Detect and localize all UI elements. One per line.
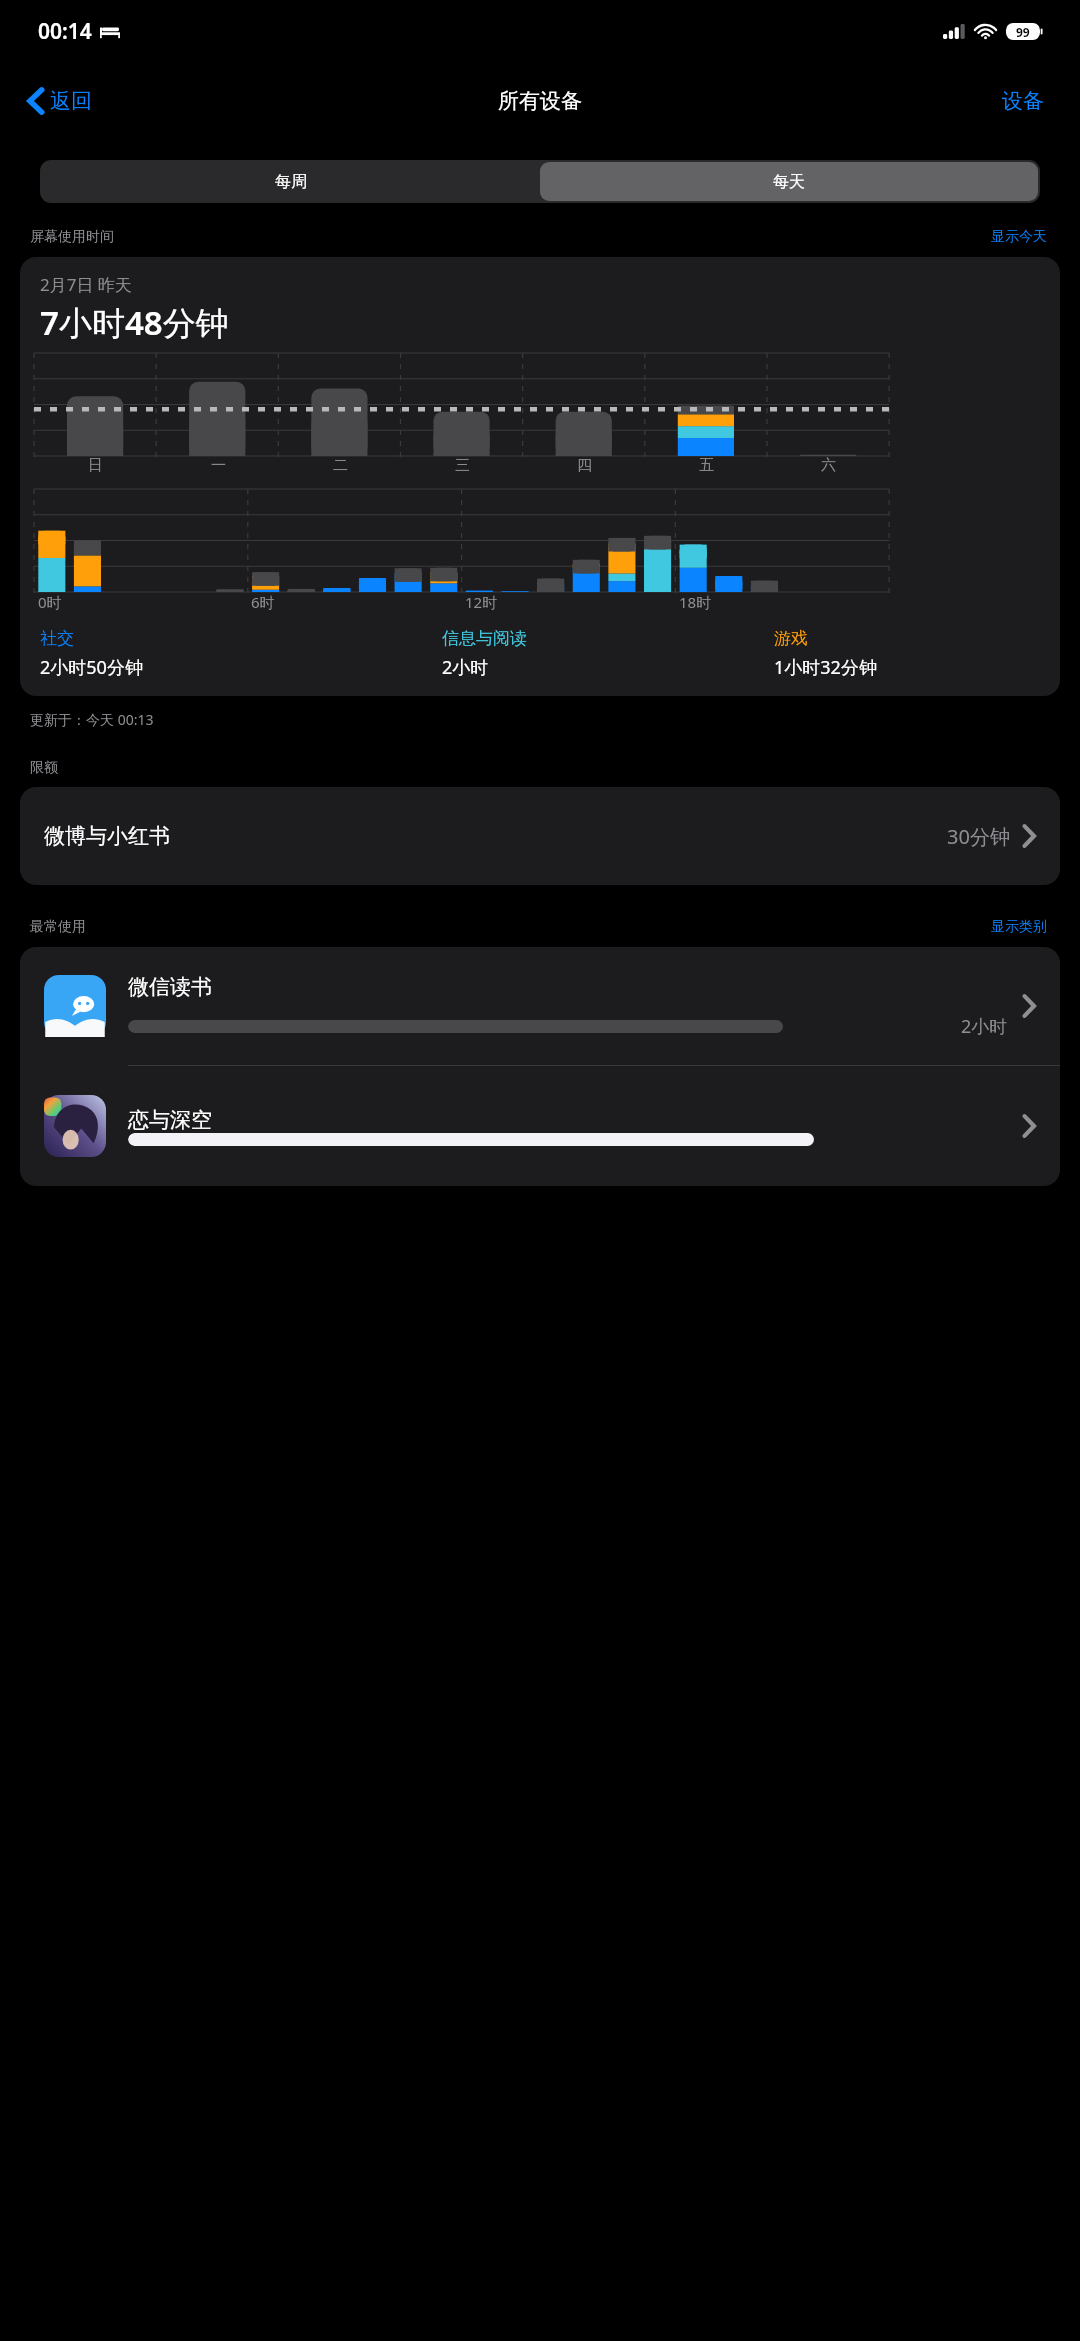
button[interactable]: 每天 (540, 162, 1038, 201)
staticText: 微信读书 (128, 974, 212, 1000)
staticText: 五 (699, 456, 714, 475)
staticText: 0时 (38, 592, 62, 612)
staticText: 屏幕使用时间 (30, 228, 114, 246)
staticText: 99 (1016, 24, 1030, 40)
button[interactable]: 微信读书 (20, 947, 1060, 1065)
button[interactable]: 每周 (42, 162, 540, 201)
staticText: 信息与阅读 (442, 628, 527, 649)
button[interactable]: 设备 (996, 82, 1050, 120)
button[interactable]: 社交 (40, 628, 442, 680)
staticText: 每天 (773, 172, 805, 192)
staticText: 六 (821, 456, 836, 475)
staticText: 三 (455, 456, 470, 475)
staticText: 7小时48分钟 (40, 300, 229, 345)
staticText: 2小时 (961, 1014, 1008, 1039)
staticText: 最常使用 (30, 918, 86, 936)
button[interactable]: 游戏 (774, 628, 1046, 680)
button[interactable]: 恋与深空 (20, 1066, 1060, 1186)
staticText: 四 (577, 456, 592, 475)
staticText: 返回 (50, 88, 92, 114)
staticText: 12时 (465, 592, 498, 612)
staticText: 00:14 (38, 17, 92, 46)
staticText: 微博与小红书 (44, 823, 170, 849)
staticText: 一 (211, 456, 226, 475)
staticText: 社交 (40, 628, 74, 649)
button[interactable]: 返回 (22, 81, 98, 121)
staticText: 每周 (275, 172, 307, 192)
staticText: 更新于：今天 00:13 (30, 710, 154, 729)
button[interactable]: 信息与阅读 (442, 628, 774, 680)
staticText: 2小时50分钟 (40, 655, 143, 680)
button[interactable]: 显示类别 (988, 915, 1050, 939)
staticText: 2小时 (442, 655, 489, 680)
staticText: 6时 (251, 592, 275, 612)
staticText: 恋与深空 (128, 1107, 212, 1133)
staticText: 2月7日 昨天 (40, 273, 132, 296)
staticText: 30分钟 (947, 823, 1010, 850)
staticText: 二 (333, 456, 348, 475)
button[interactable]: 2月7日 昨天 (20, 257, 1060, 696)
staticText: 限额 (30, 759, 58, 777)
staticText: 1小时32分钟 (774, 655, 877, 680)
button[interactable]: 显示今天 (988, 225, 1050, 249)
staticText: 18时 (679, 592, 712, 612)
staticText: 日 (88, 456, 103, 475)
staticText: 所有设备 (498, 88, 582, 114)
button[interactable]: 微博与小红书 (20, 787, 1060, 885)
staticText: 游戏 (774, 628, 808, 649)
